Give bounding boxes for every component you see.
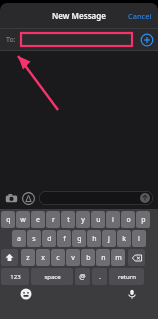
button[interactable]: l xyxy=(132,230,146,247)
staticText: p xyxy=(141,215,146,225)
staticText: k xyxy=(122,234,126,244)
button[interactable]: v xyxy=(66,249,80,266)
button[interactable]: t xyxy=(61,211,75,228)
staticText: z xyxy=(26,253,30,263)
button[interactable]: y xyxy=(76,211,90,228)
button[interactable]: Backspace xyxy=(128,249,145,266)
button[interactable]: Camera xyxy=(5,192,18,205)
button[interactable]: Dictation xyxy=(126,288,138,300)
button[interactable]: b xyxy=(81,249,95,266)
button[interactable]: p xyxy=(136,211,150,228)
staticText: h xyxy=(92,234,97,244)
button[interactable]: u xyxy=(91,211,105,228)
button[interactable]: a xyxy=(12,230,26,247)
button[interactable]: 123 xyxy=(1,268,29,285)
staticText: o xyxy=(126,215,131,225)
staticText: 123 xyxy=(10,273,21,281)
button[interactable]: x xyxy=(36,249,50,266)
staticText: a xyxy=(17,234,21,244)
staticText: t xyxy=(67,215,70,225)
staticText: n xyxy=(101,253,106,263)
staticText: j xyxy=(108,234,110,244)
button[interactable]: h xyxy=(87,230,101,247)
staticText: x xyxy=(41,253,45,263)
staticText: u xyxy=(96,215,101,225)
button[interactable]: g xyxy=(72,230,86,247)
staticText: New Message xyxy=(52,10,106,21)
staticText: s xyxy=(32,234,36,244)
staticText: To: xyxy=(6,35,16,45)
staticText: w xyxy=(20,215,26,225)
staticText: y xyxy=(81,215,85,225)
staticText: m xyxy=(115,253,122,263)
button[interactable]: c xyxy=(51,249,65,266)
button[interactable]: n xyxy=(96,249,110,266)
button[interactable]: space xyxy=(31,268,73,285)
button[interactable]: j xyxy=(102,230,116,247)
button[interactable]: return xyxy=(109,268,144,285)
staticText: f xyxy=(63,234,66,244)
button[interactable]: f xyxy=(57,230,71,247)
button[interactable]: o xyxy=(121,211,135,228)
button[interactable]: w xyxy=(16,211,30,228)
button[interactable]: Cancel xyxy=(122,7,158,25)
button[interactable]: m xyxy=(111,249,125,266)
button[interactable]: r xyxy=(46,211,60,228)
button[interactable]: z xyxy=(21,249,35,266)
button[interactable]: Add contact xyxy=(140,33,154,47)
button[interactable]: @ xyxy=(75,268,90,285)
staticText: g xyxy=(77,234,82,244)
staticText: l xyxy=(138,234,140,244)
button[interactable] xyxy=(39,191,153,205)
button[interactable]: e xyxy=(31,211,45,228)
button[interactable]: s xyxy=(27,230,41,247)
button[interactable]: k xyxy=(117,230,131,247)
button[interactable]: Shift xyxy=(1,249,18,266)
staticText: r xyxy=(52,215,55,225)
button[interactable] xyxy=(20,32,133,47)
staticText: @ xyxy=(79,272,86,282)
button[interactable]: i xyxy=(106,211,120,228)
staticText: q xyxy=(6,215,11,225)
staticText: e xyxy=(36,215,40,225)
staticText: Cancel xyxy=(128,11,152,21)
staticText: i xyxy=(112,215,114,225)
staticText: c xyxy=(56,253,60,263)
button[interactable]: Apps xyxy=(22,192,35,205)
staticText: b xyxy=(86,253,91,263)
button[interactable]: q xyxy=(1,211,15,228)
button[interactable]: Emoji xyxy=(20,288,32,300)
staticText: space xyxy=(44,273,61,281)
staticText: . xyxy=(99,272,101,282)
staticText: d xyxy=(47,234,52,244)
button[interactable]: d xyxy=(42,230,56,247)
button[interactable]: . xyxy=(92,268,107,285)
staticText: v xyxy=(71,253,75,263)
staticText: return xyxy=(118,273,136,281)
